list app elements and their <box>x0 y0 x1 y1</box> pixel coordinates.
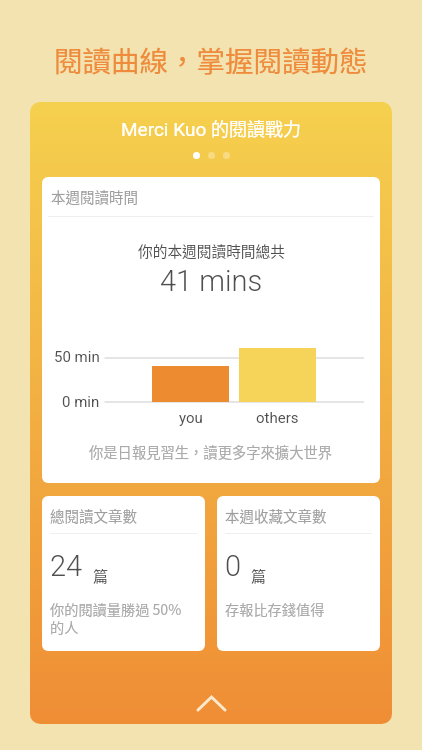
staticText: 41 mins <box>160 264 263 298</box>
staticText: you <box>179 409 203 427</box>
staticText: 50 min <box>54 348 100 366</box>
staticText: 存報比存錢值得 <box>225 599 362 620</box>
staticText: 24 <box>50 549 83 583</box>
staticText: Merci Kuo 的閱讀戰力 <box>121 115 301 141</box>
button[interactable]: 本週收藏文章數 <box>217 496 380 651</box>
staticText: others <box>256 409 299 427</box>
staticText: 0 min <box>62 393 100 411</box>
staticText: 總閱讀文章數 <box>50 505 137 526</box>
staticText: 篇 <box>251 565 267 587</box>
staticText: 0 <box>225 549 242 583</box>
staticText: 你的閱讀量勝過 50% 的人 <box>50 599 187 637</box>
button[interactable]: Collapse <box>30 683 392 723</box>
staticText: 你是日報見習生，讀更多字來擴大世界 <box>89 441 333 462</box>
staticText: 本週閱讀時間 <box>51 186 138 207</box>
staticText: 閱讀曲線，掌握閱讀動態 <box>54 39 368 80</box>
staticText: 你的本週閱讀時間總共 <box>138 240 285 261</box>
button[interactable]: 總閱讀文章數 <box>42 496 205 651</box>
button[interactable]: 本週閱讀時間 <box>42 177 380 483</box>
staticText: 本週收藏文章數 <box>225 505 327 526</box>
staticText: 篇 <box>93 565 109 587</box>
